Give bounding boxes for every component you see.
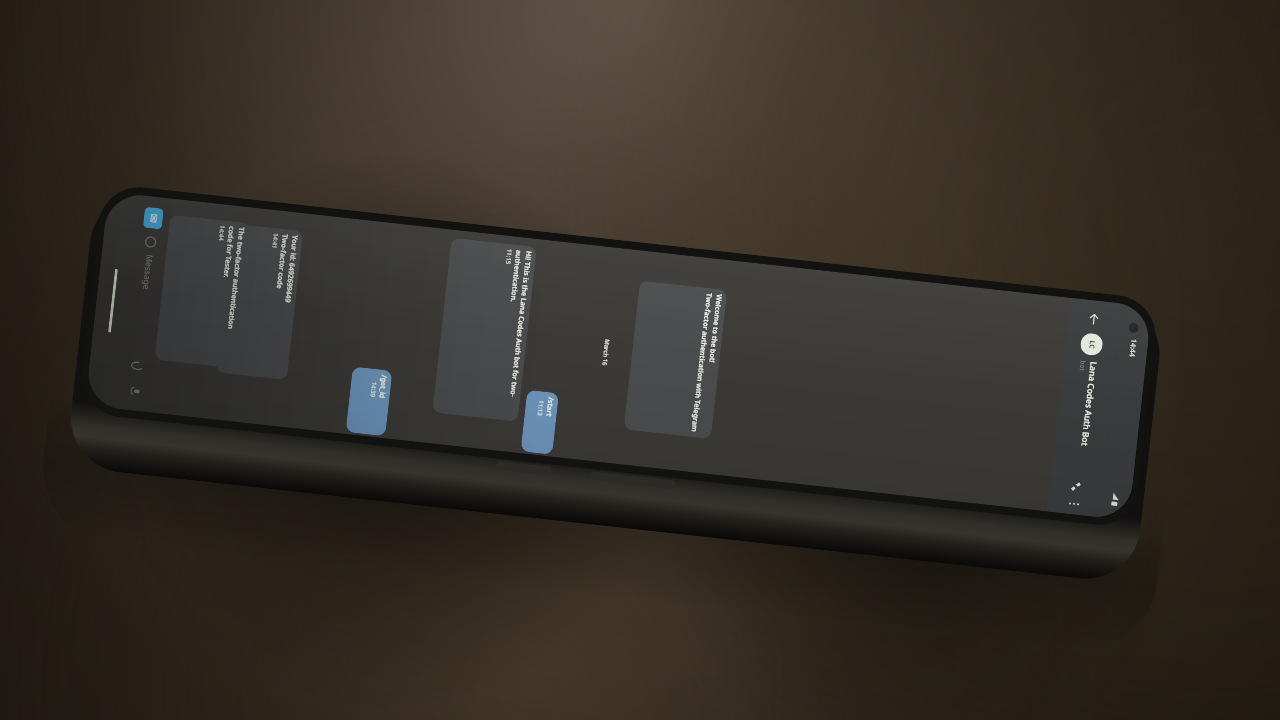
staticText: March 16 xyxy=(600,339,611,366)
staticText: Welcome to the bot! xyxy=(706,294,724,363)
button[interactable]: More options xyxy=(1066,496,1082,511)
staticText: ✉ xyxy=(146,213,160,224)
staticText: Two-factor code xyxy=(274,234,290,289)
staticText: Message xyxy=(140,254,156,291)
button[interactable]: Sticker xyxy=(143,207,164,230)
staticText: Two-factor authentication with Telegram xyxy=(689,292,714,433)
staticText: LC xyxy=(1086,340,1097,350)
staticText: 11:15 xyxy=(504,248,514,265)
staticText: Lana Codes Auth Bot xyxy=(1078,361,1100,447)
button[interactable]: Welcome to the bot! xyxy=(623,280,727,439)
button[interactable]: Hi! This is the Lana Codes Auth bot for … xyxy=(432,237,537,422)
staticText: 14:39 xyxy=(368,381,378,398)
button[interactable]: Call xyxy=(1065,475,1087,497)
staticText: 14:44 xyxy=(217,225,226,242)
staticText: 14:44 xyxy=(1126,338,1138,357)
staticText: Your id: 6492699449 xyxy=(282,235,300,303)
staticText: The two-factor authentication xyxy=(225,227,246,330)
button[interactable]: /get_id xyxy=(345,366,392,436)
button[interactable]: Back xyxy=(1082,307,1105,331)
button[interactable]: Emoji xyxy=(142,233,160,250)
staticText: authentication. xyxy=(508,249,524,303)
button[interactable]: Your id: 6492699449 xyxy=(215,223,303,380)
staticText: /get_id xyxy=(376,374,389,399)
staticText: Hi! This is the Lana Codes Auth bot for … xyxy=(505,250,533,416)
button[interactable]: The two-factor authentication xyxy=(154,214,250,368)
staticText: /start xyxy=(543,397,555,418)
button[interactable]: Voice message xyxy=(125,381,145,401)
button[interactable]: /start xyxy=(520,390,559,455)
button[interactable]: Attach xyxy=(128,356,147,376)
staticText: code for Tester. xyxy=(221,226,236,278)
staticText: bot xyxy=(1078,360,1088,372)
staticText: 14:41 xyxy=(270,233,280,249)
staticText: 11:13 xyxy=(535,400,545,417)
